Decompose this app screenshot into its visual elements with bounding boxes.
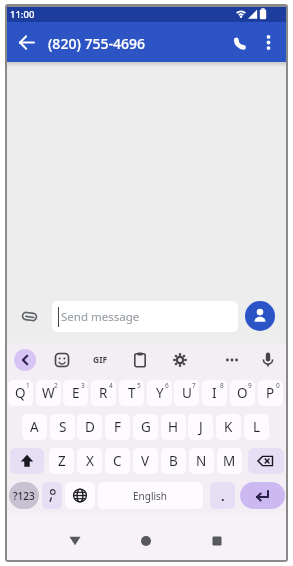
staticText: 11:00 xyxy=(10,8,35,21)
button[interactable]: V xyxy=(133,448,158,474)
button[interactable] xyxy=(136,531,156,551)
button[interactable] xyxy=(65,482,95,509)
button[interactable] xyxy=(65,531,85,551)
staticText: 8 xyxy=(220,381,224,390)
staticText: Y xyxy=(156,384,164,402)
button[interactable]: I xyxy=(202,380,227,406)
button[interactable]: P xyxy=(258,380,283,406)
staticText: X xyxy=(86,452,94,470)
button[interactable]: J xyxy=(188,414,213,440)
button[interactable]: ?123 xyxy=(9,482,39,509)
button[interactable] xyxy=(229,32,252,54)
button[interactable] xyxy=(10,448,44,474)
staticText: 1 xyxy=(26,381,30,390)
staticText: W xyxy=(42,384,55,402)
button[interactable]: X xyxy=(77,448,102,474)
button[interactable]: L xyxy=(244,414,269,440)
staticText: G xyxy=(141,418,151,436)
staticText: (820) 755-4696 xyxy=(48,34,145,53)
staticText: 4 xyxy=(109,381,113,390)
button[interactable] xyxy=(207,531,227,551)
staticText: D xyxy=(85,418,95,436)
button[interactable] xyxy=(259,31,279,54)
button[interactable] xyxy=(171,351,189,369)
staticText: ?123 xyxy=(13,489,35,503)
staticText: 0 xyxy=(276,381,280,390)
button[interactable]: R xyxy=(91,380,116,406)
button[interactable] xyxy=(19,306,40,327)
button[interactable] xyxy=(240,482,285,509)
button[interactable]: English xyxy=(98,482,203,509)
button[interactable] xyxy=(131,351,149,369)
staticText: 6 xyxy=(165,381,169,390)
button[interactable]: O xyxy=(230,380,255,406)
staticText: F xyxy=(114,418,122,436)
staticText: P xyxy=(266,384,275,402)
staticText: T xyxy=(128,384,136,402)
button[interactable]: M xyxy=(217,448,242,474)
staticText: I xyxy=(212,384,217,402)
button[interactable]: S xyxy=(50,414,75,440)
button[interactable] xyxy=(259,350,277,370)
button[interactable]: . xyxy=(210,482,235,509)
staticText: O xyxy=(237,384,248,402)
staticText: V xyxy=(141,452,150,470)
button[interactable]: B xyxy=(161,448,186,474)
staticText: H xyxy=(168,418,179,436)
button[interactable]: Send message xyxy=(52,301,238,332)
button[interactable]: Q xyxy=(8,380,33,406)
button[interactable] xyxy=(42,482,62,509)
staticText: . xyxy=(221,487,225,505)
button[interactable]: H xyxy=(161,414,186,440)
button[interactable]: C xyxy=(105,448,130,474)
staticText: L xyxy=(253,418,261,436)
staticText: S xyxy=(59,418,67,436)
button[interactable]: Y xyxy=(147,380,172,406)
staticText: Z xyxy=(58,452,66,470)
staticText: A xyxy=(30,418,39,436)
button[interactable] xyxy=(53,351,71,369)
button[interactable] xyxy=(245,301,275,331)
button[interactable]: G xyxy=(133,414,158,440)
button[interactable]: T xyxy=(119,380,144,406)
staticText: M xyxy=(223,452,236,470)
staticText: U xyxy=(182,384,192,402)
button[interactable]: E xyxy=(63,380,88,406)
staticText: 2 xyxy=(54,381,58,390)
staticText: Send message xyxy=(61,309,140,325)
staticText: GIF xyxy=(93,354,108,366)
staticText: 7 xyxy=(192,381,196,390)
button[interactable]: A xyxy=(22,414,47,440)
staticText: B xyxy=(169,452,178,470)
button[interactable]: N xyxy=(189,448,214,474)
staticText: 5 xyxy=(137,381,141,390)
button[interactable]: W xyxy=(36,380,61,406)
staticText: K xyxy=(224,418,233,436)
staticText: E xyxy=(72,384,80,402)
staticText: 3 xyxy=(81,381,85,390)
button[interactable]: D xyxy=(77,414,102,440)
staticText: 9 xyxy=(248,381,252,390)
button[interactable] xyxy=(222,352,242,368)
button[interactable]: F xyxy=(105,414,130,440)
button[interactable]: U xyxy=(174,380,199,406)
button[interactable]: GIF xyxy=(89,352,111,368)
staticText: N xyxy=(196,452,207,470)
button[interactable] xyxy=(15,32,39,53)
staticText: Q xyxy=(15,384,26,402)
staticText: R xyxy=(99,384,108,402)
button[interactable]: K xyxy=(216,414,241,440)
button[interactable] xyxy=(248,448,284,474)
button[interactable] xyxy=(14,349,36,371)
staticText: English xyxy=(133,489,168,503)
button[interactable]: Z xyxy=(49,448,74,474)
staticText: J xyxy=(199,418,203,436)
staticText: C xyxy=(113,452,122,470)
